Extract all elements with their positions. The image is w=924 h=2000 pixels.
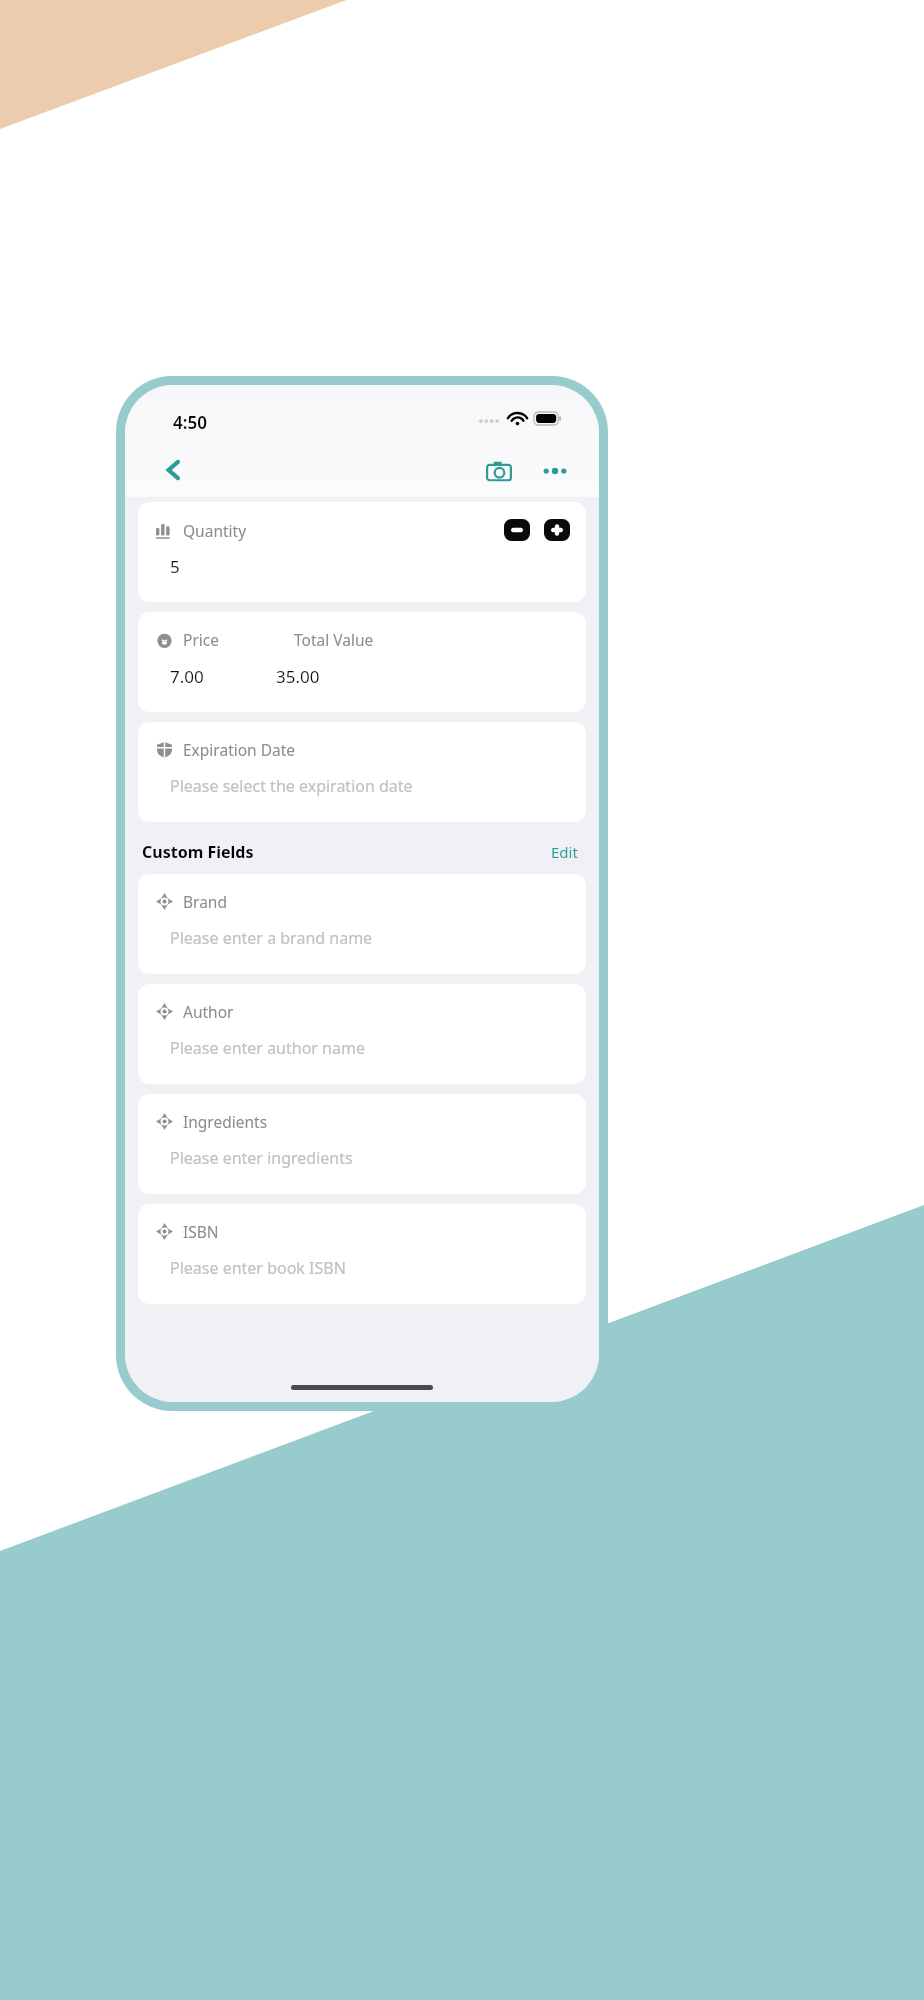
button[interactable]: Camera [477,449,521,493]
staticText: Please enter book ISBN [170,1257,346,1279]
staticText: ISBN [183,1221,219,1242]
button[interactable]: Back [151,447,197,493]
staticText: Please enter author name [170,1037,365,1059]
staticText: 4:50 [173,411,207,434]
staticText: 7.00 [170,665,204,688]
staticText: Expiration Date [183,739,296,760]
staticText: Price [183,629,219,650]
button[interactable]: Ingredients [138,1094,586,1194]
staticText: Please enter ingredients [170,1147,353,1169]
staticText: Please select the expiration date [170,775,413,797]
button[interactable]: ISBN [138,1204,586,1304]
button[interactable]: Increase quantity [544,519,570,541]
staticText: Edit [551,842,578,862]
staticText: Please enter a brand name [170,927,373,949]
button[interactable]: Price [138,612,586,712]
staticText: Brand [183,891,227,912]
button[interactable]: Expiration Date [138,722,586,822]
staticText: 35.00 [276,665,320,688]
staticText: Author [183,1001,234,1022]
staticText: Total Value [294,629,374,650]
button[interactable]: Author [138,984,586,1084]
staticText: Ingredients [183,1111,268,1132]
button[interactable]: Brand [138,874,586,974]
button[interactable]: Edit [547,838,582,866]
button[interactable]: Decrease quantity [504,519,530,541]
button[interactable]: Quantity [138,502,586,602]
button[interactable]: More options [533,449,577,493]
staticText: Quantity [183,520,247,541]
staticText: Custom Fields [142,841,254,863]
staticText: 5 [170,555,180,578]
